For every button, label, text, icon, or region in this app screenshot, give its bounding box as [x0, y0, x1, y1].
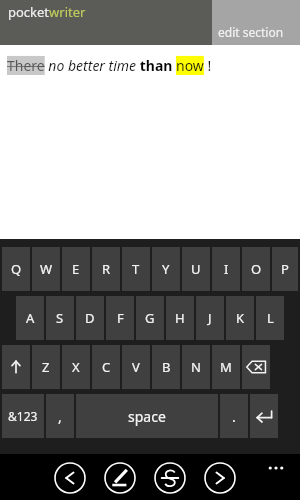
button[interactable]	[250, 394, 278, 438]
staticText: G	[145, 309, 155, 327]
staticText: Q	[11, 260, 22, 278]
staticText: H	[175, 309, 185, 327]
button[interactable]: W	[32, 247, 60, 291]
button[interactable]: Strikethrough	[152, 460, 188, 496]
staticText: K	[236, 309, 245, 327]
button[interactable]: S	[46, 296, 74, 340]
button[interactable]: Forward	[202, 460, 238, 496]
button[interactable]: D	[76, 296, 104, 340]
button[interactable]: G	[136, 296, 164, 340]
staticText: R	[102, 260, 111, 278]
staticText: .	[232, 407, 236, 426]
button[interactable]: More options	[258, 456, 294, 492]
button[interactable]	[242, 345, 270, 389]
staticText: E	[72, 260, 80, 278]
button[interactable]: H	[166, 296, 194, 340]
button[interactable]: F	[106, 296, 134, 340]
button[interactable]: A	[16, 296, 44, 340]
button[interactable]: ,	[46, 394, 74, 438]
staticText: C	[102, 358, 111, 376]
staticText: Z	[42, 358, 50, 376]
staticText: B	[162, 358, 171, 376]
staticText: X	[72, 358, 80, 376]
staticText: P	[281, 260, 289, 278]
staticText: T	[132, 260, 140, 278]
staticText: V	[132, 358, 140, 376]
button[interactable]: X	[62, 345, 90, 389]
button[interactable]: Y	[152, 247, 180, 291]
staticText: pocketwriter	[8, 3, 86, 21]
button[interactable]: pocketwriter	[8, 3, 86, 21]
button[interactable]: U	[182, 247, 210, 291]
button[interactable]: J	[196, 296, 224, 340]
staticText: L	[267, 309, 274, 327]
staticText: A	[26, 309, 35, 327]
button[interactable]: K	[226, 296, 254, 340]
staticText: D	[85, 309, 95, 327]
button[interactable]: O	[242, 247, 270, 291]
button[interactable]: &123	[2, 394, 44, 438]
staticText: F	[117, 309, 124, 327]
button[interactable]: L	[256, 296, 284, 340]
button[interactable]: B	[152, 345, 180, 389]
button[interactable]: N	[182, 345, 210, 389]
button[interactable]: V	[122, 345, 150, 389]
button[interactable]: Z	[32, 345, 60, 389]
button[interactable]: T	[122, 247, 150, 291]
staticText: U	[191, 260, 201, 278]
staticText: There no better time than now !	[7, 56, 212, 75]
staticText: Y	[162, 260, 170, 278]
button[interactable]: C	[92, 345, 120, 389]
staticText: N	[191, 358, 201, 376]
button[interactable]: Q	[2, 247, 30, 291]
button[interactable]: Back	[52, 460, 88, 496]
staticText: W	[40, 260, 53, 278]
staticText: ,	[58, 407, 62, 426]
button[interactable]: E	[62, 247, 90, 291]
button[interactable]: Edit	[102, 460, 138, 496]
staticText: J	[208, 309, 212, 327]
staticText: I	[224, 260, 229, 278]
staticText: &123	[8, 408, 38, 424]
button[interactable]: .	[220, 394, 248, 438]
button[interactable]: I	[212, 247, 240, 291]
button[interactable]: M	[212, 345, 240, 389]
staticText: edit section	[218, 24, 284, 40]
staticText: M	[220, 358, 232, 376]
button[interactable]: space	[76, 394, 218, 438]
button[interactable]	[2, 345, 30, 389]
button[interactable]: P	[272, 247, 298, 291]
button[interactable]: edit section	[212, 0, 300, 45]
staticText: space	[128, 407, 166, 426]
button[interactable]: R	[92, 247, 120, 291]
staticText: S	[56, 309, 64, 327]
staticText: O	[251, 260, 262, 278]
